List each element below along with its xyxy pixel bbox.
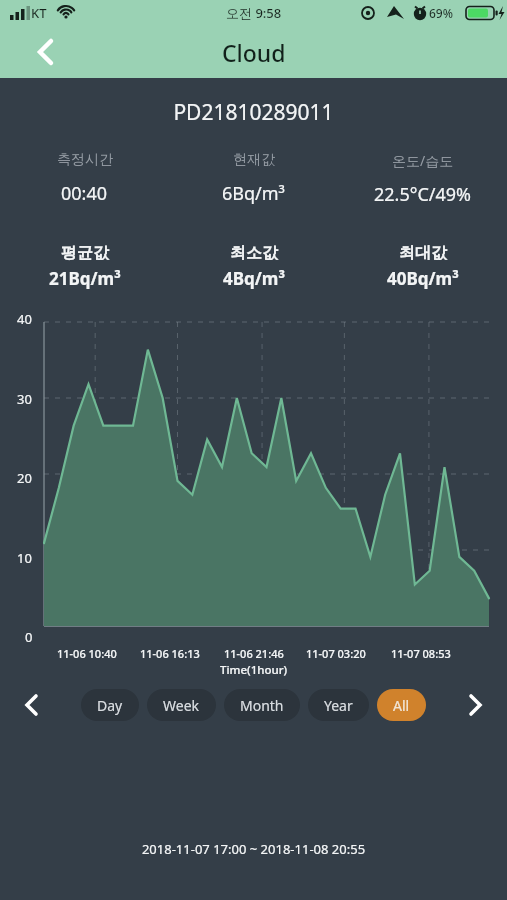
staticText: KT bbox=[31, 4, 47, 22]
button[interactable]: Week bbox=[147, 689, 216, 721]
staticText: 현재값 bbox=[233, 151, 275, 169]
staticText: Month bbox=[240, 696, 284, 715]
staticText: All bbox=[393, 696, 410, 715]
staticText: 11-06 16:13 bbox=[140, 646, 200, 661]
staticText: 평균값 bbox=[61, 243, 109, 263]
staticText: 11-06 10:40 bbox=[57, 646, 117, 661]
staticText: 0 bbox=[25, 628, 33, 646]
staticText: 30 bbox=[17, 390, 32, 408]
staticText: Time(1hour) bbox=[220, 662, 288, 678]
staticText: 최소값 bbox=[230, 243, 278, 263]
staticText: 00:40 bbox=[61, 181, 108, 206]
staticText: Week bbox=[163, 696, 200, 715]
staticText: 22.5°C/49% bbox=[374, 182, 472, 207]
button[interactable]: Previous bbox=[14, 688, 48, 722]
staticText: 6Bq/m³ bbox=[222, 181, 285, 206]
staticText: 40 bbox=[17, 310, 32, 328]
staticText: 20 bbox=[17, 469, 32, 487]
button[interactable]: Day bbox=[81, 689, 139, 721]
staticText: 측정시간 bbox=[57, 151, 113, 169]
staticText: 10 bbox=[17, 549, 32, 567]
staticText: Day bbox=[97, 696, 123, 715]
staticText: 11-07 03:20 bbox=[306, 646, 366, 661]
staticText: Year bbox=[324, 696, 353, 715]
button[interactable]: All bbox=[377, 689, 426, 721]
staticText: 21Bq/m³ bbox=[49, 267, 121, 290]
button[interactable]: Next bbox=[459, 688, 493, 722]
button[interactable]: Year bbox=[308, 689, 369, 721]
button[interactable]: Back bbox=[22, 29, 68, 75]
staticText: 4Bq/m³ bbox=[223, 267, 285, 290]
staticText: 2018-11-07 17:00 ~ 2018-11-08 20:55 bbox=[0, 840, 507, 858]
staticText: 40Bq/m³ bbox=[387, 267, 459, 290]
staticText: 11-06 21:46 bbox=[224, 646, 284, 661]
staticText: 최대값 bbox=[399, 243, 447, 263]
staticText: PD21810289011 bbox=[0, 98, 507, 127]
staticText: Cloud bbox=[222, 37, 286, 68]
button[interactable]: Month bbox=[224, 689, 300, 721]
staticText: 11-07 08:53 bbox=[391, 646, 451, 661]
staticText: 오전 9:58 bbox=[226, 4, 282, 22]
staticText: 69% bbox=[429, 5, 453, 21]
staticText: 온도/습도 bbox=[392, 151, 454, 170]
